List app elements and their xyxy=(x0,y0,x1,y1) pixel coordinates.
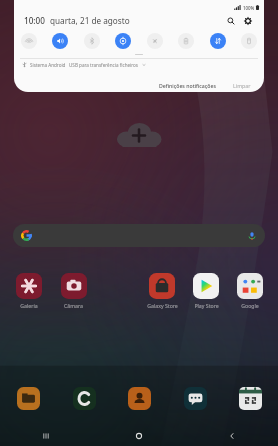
staticText: Galaxy Store xyxy=(147,302,178,309)
button[interactable]: Sound xyxy=(49,30,71,52)
button[interactable] xyxy=(13,224,265,247)
button[interactable]: Google xyxy=(228,271,272,311)
button[interactable]: Files xyxy=(8,383,48,413)
staticText: Câmara xyxy=(64,302,83,309)
button[interactable]: Phone xyxy=(64,383,104,413)
button[interactable]: Galaxy Store xyxy=(140,271,184,311)
button[interactable]: Home xyxy=(92,425,185,446)
button[interactable]: Settings xyxy=(241,14,254,27)
staticText: Sistema Android xyxy=(30,62,66,68)
staticText: 100% xyxy=(243,5,255,11)
button[interactable]: Location xyxy=(112,30,134,52)
button[interactable]: Contacts xyxy=(119,383,159,413)
staticText: Google xyxy=(241,302,259,309)
staticText: Galeria xyxy=(20,302,38,309)
button[interactable]: Bluetooth xyxy=(81,30,103,52)
button[interactable]: Limpar xyxy=(230,80,254,91)
button[interactable]: Flashlight xyxy=(238,30,260,52)
button[interactable]: Play Store xyxy=(184,271,228,311)
staticText: Limpar xyxy=(233,82,251,89)
button[interactable]: Sistema Android xyxy=(22,59,256,70)
staticText: 10:00 xyxy=(24,15,45,26)
button[interactable]: Definições notificações xyxy=(156,80,220,91)
button[interactable]: Battery saver xyxy=(175,30,197,52)
button[interactable]: Recents xyxy=(0,425,92,446)
button[interactable]: Messages xyxy=(175,383,215,413)
button[interactable]: Wi-Fi xyxy=(18,30,40,52)
button[interactable]: Câmara xyxy=(51,271,96,311)
button[interactable]: Galeria xyxy=(6,271,51,311)
staticText: quarta, 21 de agosto xyxy=(50,15,130,26)
button[interactable]: Add widget xyxy=(0,118,278,152)
staticText: Definições notificações xyxy=(159,82,217,89)
button[interactable]: Flight mode xyxy=(144,30,166,52)
staticText: USB para transferência ficheiros xyxy=(69,62,139,68)
staticText: Play Store xyxy=(194,302,219,309)
button[interactable]: Calendar xyxy=(230,383,270,413)
button[interactable]: Mobile data xyxy=(207,30,229,52)
button[interactable]: Back xyxy=(185,425,278,446)
button[interactable]: Search xyxy=(224,14,237,27)
